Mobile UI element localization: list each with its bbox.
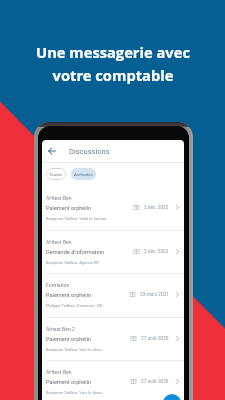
staticText: 27 août 2020 (141, 379, 169, 385)
staticText: Philippe Tailleur: Concerne : DE… (46, 303, 105, 308)
staticText: AHtest Ben (46, 239, 72, 245)
staticText: Paiement orphelin (46, 336, 92, 343)
staticText: 27 août 2020 (141, 336, 169, 342)
staticText: AHtest Ben (46, 369, 72, 375)
staticText: 23 mars 2021 (140, 292, 169, 298)
staticText: Demande d'information (46, 249, 105, 256)
staticText: Paiement orphelin (46, 205, 92, 212)
staticText: 2 déc. 2022 (144, 205, 169, 211)
staticText: Paiement orphelin (46, 379, 92, 386)
staticText: Une messagerie avec votre comptable (36, 42, 190, 85)
staticText: Paiement orphelin (46, 292, 92, 299)
button[interactable]: AHtest Ben (42, 360, 184, 400)
button[interactable]: Toutes (46, 168, 66, 180)
button[interactable]: Back (45, 144, 59, 158)
button[interactable]: AHtest Ben (42, 186, 184, 229)
button[interactable]: New message (163, 394, 181, 400)
staticText: AHtest Ben (46, 195, 72, 201)
button[interactable]: Ahtest Ben 2 (42, 317, 184, 360)
staticText: Benjamin Tailleur: Agence RP (46, 260, 100, 265)
staticText: Ahtest Ben 2 (46, 326, 75, 332)
staticText: Discussions (69, 147, 110, 156)
button[interactable]: AHtest Ben (42, 230, 184, 273)
staticText: Benjamin Tailleur: Voci le doca… (46, 347, 105, 352)
staticText: Archivées (74, 172, 93, 177)
button[interactable]: Archivées (71, 168, 96, 180)
staticText: Formation (46, 282, 70, 288)
staticText: Benjamin Tailleur: Voilà la facture (46, 216, 107, 221)
staticText: Toutes (49, 172, 63, 177)
staticText: Benjamin Tailleur: Voci le doca… (46, 390, 105, 395)
button[interactable]: Formation (42, 273, 184, 316)
staticText: 2 déc. 2022 (144, 249, 169, 255)
